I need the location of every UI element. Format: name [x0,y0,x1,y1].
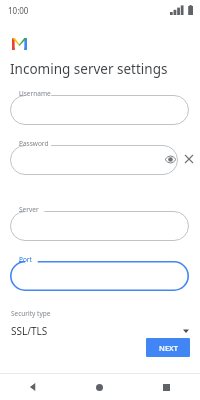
staticText: 10:00 [8,5,29,16]
button[interactable]: NEXT [146,338,190,357]
button[interactable]: Show password [162,151,178,167]
staticText: Security type [11,309,51,318]
button[interactable] [10,95,189,125]
button[interactable]: Recent apps [133,374,200,400]
staticText: NEXT [159,343,178,353]
button[interactable]: Clear password [181,151,197,167]
staticText: Server [19,205,39,214]
staticText: Password [19,139,49,148]
button[interactable]: Home [66,374,133,400]
staticText: Port [19,255,32,264]
button[interactable]: Security type [0,305,200,338]
button[interactable]: Back [0,374,66,400]
staticText: Incoming server settings [10,60,168,78]
staticText: Username [19,89,51,98]
button[interactable] [10,145,178,175]
staticText: SSL/TLS [11,324,48,338]
button[interactable] [10,211,189,241]
button[interactable] [10,261,189,291]
